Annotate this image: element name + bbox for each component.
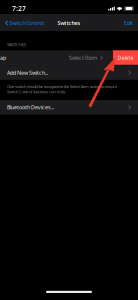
staticText: Add New Switch... [7, 69, 48, 76]
staticText: Delete [117, 54, 133, 61]
button[interactable]: Bluetooth Devices... [0, 100, 138, 114]
staticText: SWITCHES [7, 42, 26, 47]
staticText: Switch Control [9, 19, 43, 27]
staticText: Bluetooth Devices... [7, 104, 54, 111]
button[interactable]: Switch Control [3, 18, 45, 28]
staticText: Switches [57, 19, 80, 27]
button[interactable]: Add New Switch... [0, 65, 138, 80]
button[interactable]: Delete [113, 50, 138, 65]
staticText: Select Item [69, 54, 97, 61]
staticText: 7:27 [12, 4, 26, 13]
staticText: ap [0, 54, 6, 61]
staticText: One switch should be assigned to the Sel… [7, 84, 117, 94]
staticText: Edit [124, 19, 133, 27]
button[interactable]: Edit [122, 18, 135, 28]
